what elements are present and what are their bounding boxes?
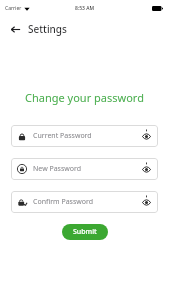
button[interactable]: Show password — [137, 193, 155, 211]
button[interactable]: Confirm Password — [11, 191, 158, 213]
button[interactable]: Show password — [137, 127, 155, 145]
button[interactable]: Current Password — [11, 125, 158, 147]
staticText: Carrier — [5, 5, 22, 12]
button[interactable]: New Password — [11, 158, 158, 180]
staticText: Current Password — [33, 131, 137, 141]
staticText: Settings — [28, 22, 67, 36]
button[interactable]: Submit — [62, 224, 108, 240]
staticText: 8:53 AM — [75, 5, 95, 12]
button[interactable]: Back — [6, 20, 24, 38]
staticText: New Password — [33, 164, 137, 174]
staticText: Submit — [73, 227, 97, 237]
staticText: Confirm Password — [33, 197, 137, 207]
staticText: Change your password — [0, 90, 169, 105]
button[interactable]: Show password — [137, 160, 155, 178]
